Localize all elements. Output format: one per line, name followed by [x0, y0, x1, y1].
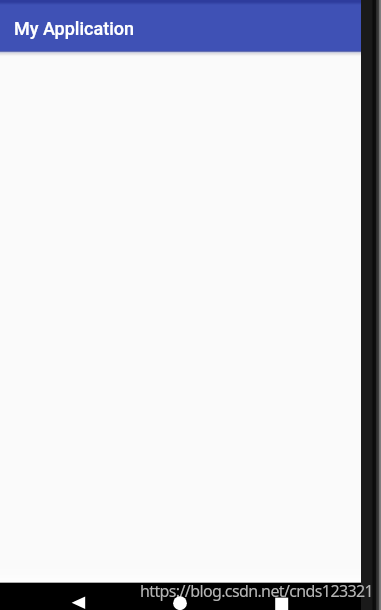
button[interactable]: Home	[163, 592, 197, 610]
staticText: My Application	[14, 18, 135, 39]
staticText: https://blog.csdn.net/cnds123321	[140, 580, 374, 602]
button[interactable]: Back	[62, 592, 96, 610]
button[interactable]: Recent apps	[265, 592, 299, 610]
